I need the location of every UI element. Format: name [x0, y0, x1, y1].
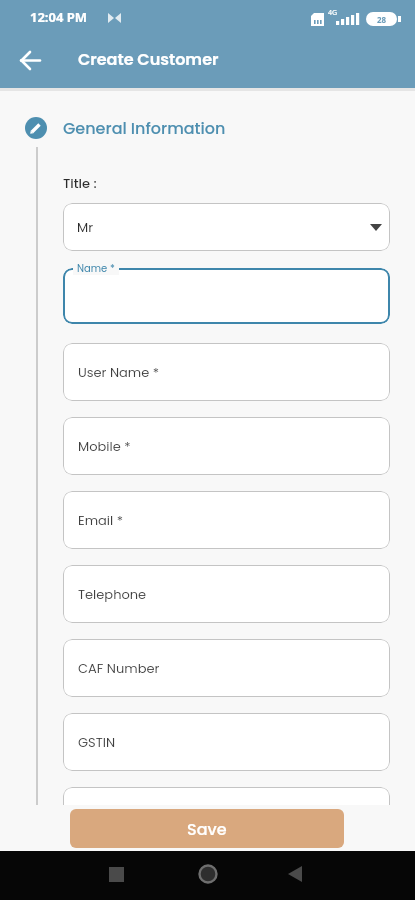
button[interactable]: Mobile *: [63, 417, 390, 475]
button[interactable]: User Name *: [63, 343, 390, 401]
staticText: Email *: [78, 511, 124, 529]
staticText: 12:04 PM: [30, 8, 88, 26]
button[interactable]: [20, 50, 41, 71]
staticText: CAF Number: [78, 659, 160, 677]
staticText: 4G: [328, 8, 338, 18]
button[interactable]: [63, 268, 390, 324]
staticText: Save: [187, 818, 227, 840]
button[interactable]: Email *: [63, 491, 390, 549]
button[interactable]: Mr: [63, 203, 390, 251]
staticText: 28: [377, 14, 387, 25]
button[interactable]: [288, 866, 303, 882]
staticText: GSTIN: [78, 733, 116, 751]
staticText: General Information: [63, 117, 226, 139]
staticText: Title :: [63, 174, 97, 192]
staticText: Mobile *: [78, 437, 131, 455]
button[interactable]: GSTIN: [63, 713, 390, 771]
button[interactable]: [63, 787, 390, 845]
staticText: User Name *: [78, 363, 160, 381]
staticText: Create Customer: [78, 48, 219, 70]
button[interactable]: Save: [70, 809, 344, 848]
button[interactable]: Telephone: [63, 565, 390, 623]
button[interactable]: CAF Number: [63, 639, 390, 697]
button[interactable]: [198, 864, 218, 884]
staticText: Name *: [77, 261, 115, 275]
staticText: Mr: [77, 218, 94, 236]
staticText: Telephone: [78, 585, 147, 603]
